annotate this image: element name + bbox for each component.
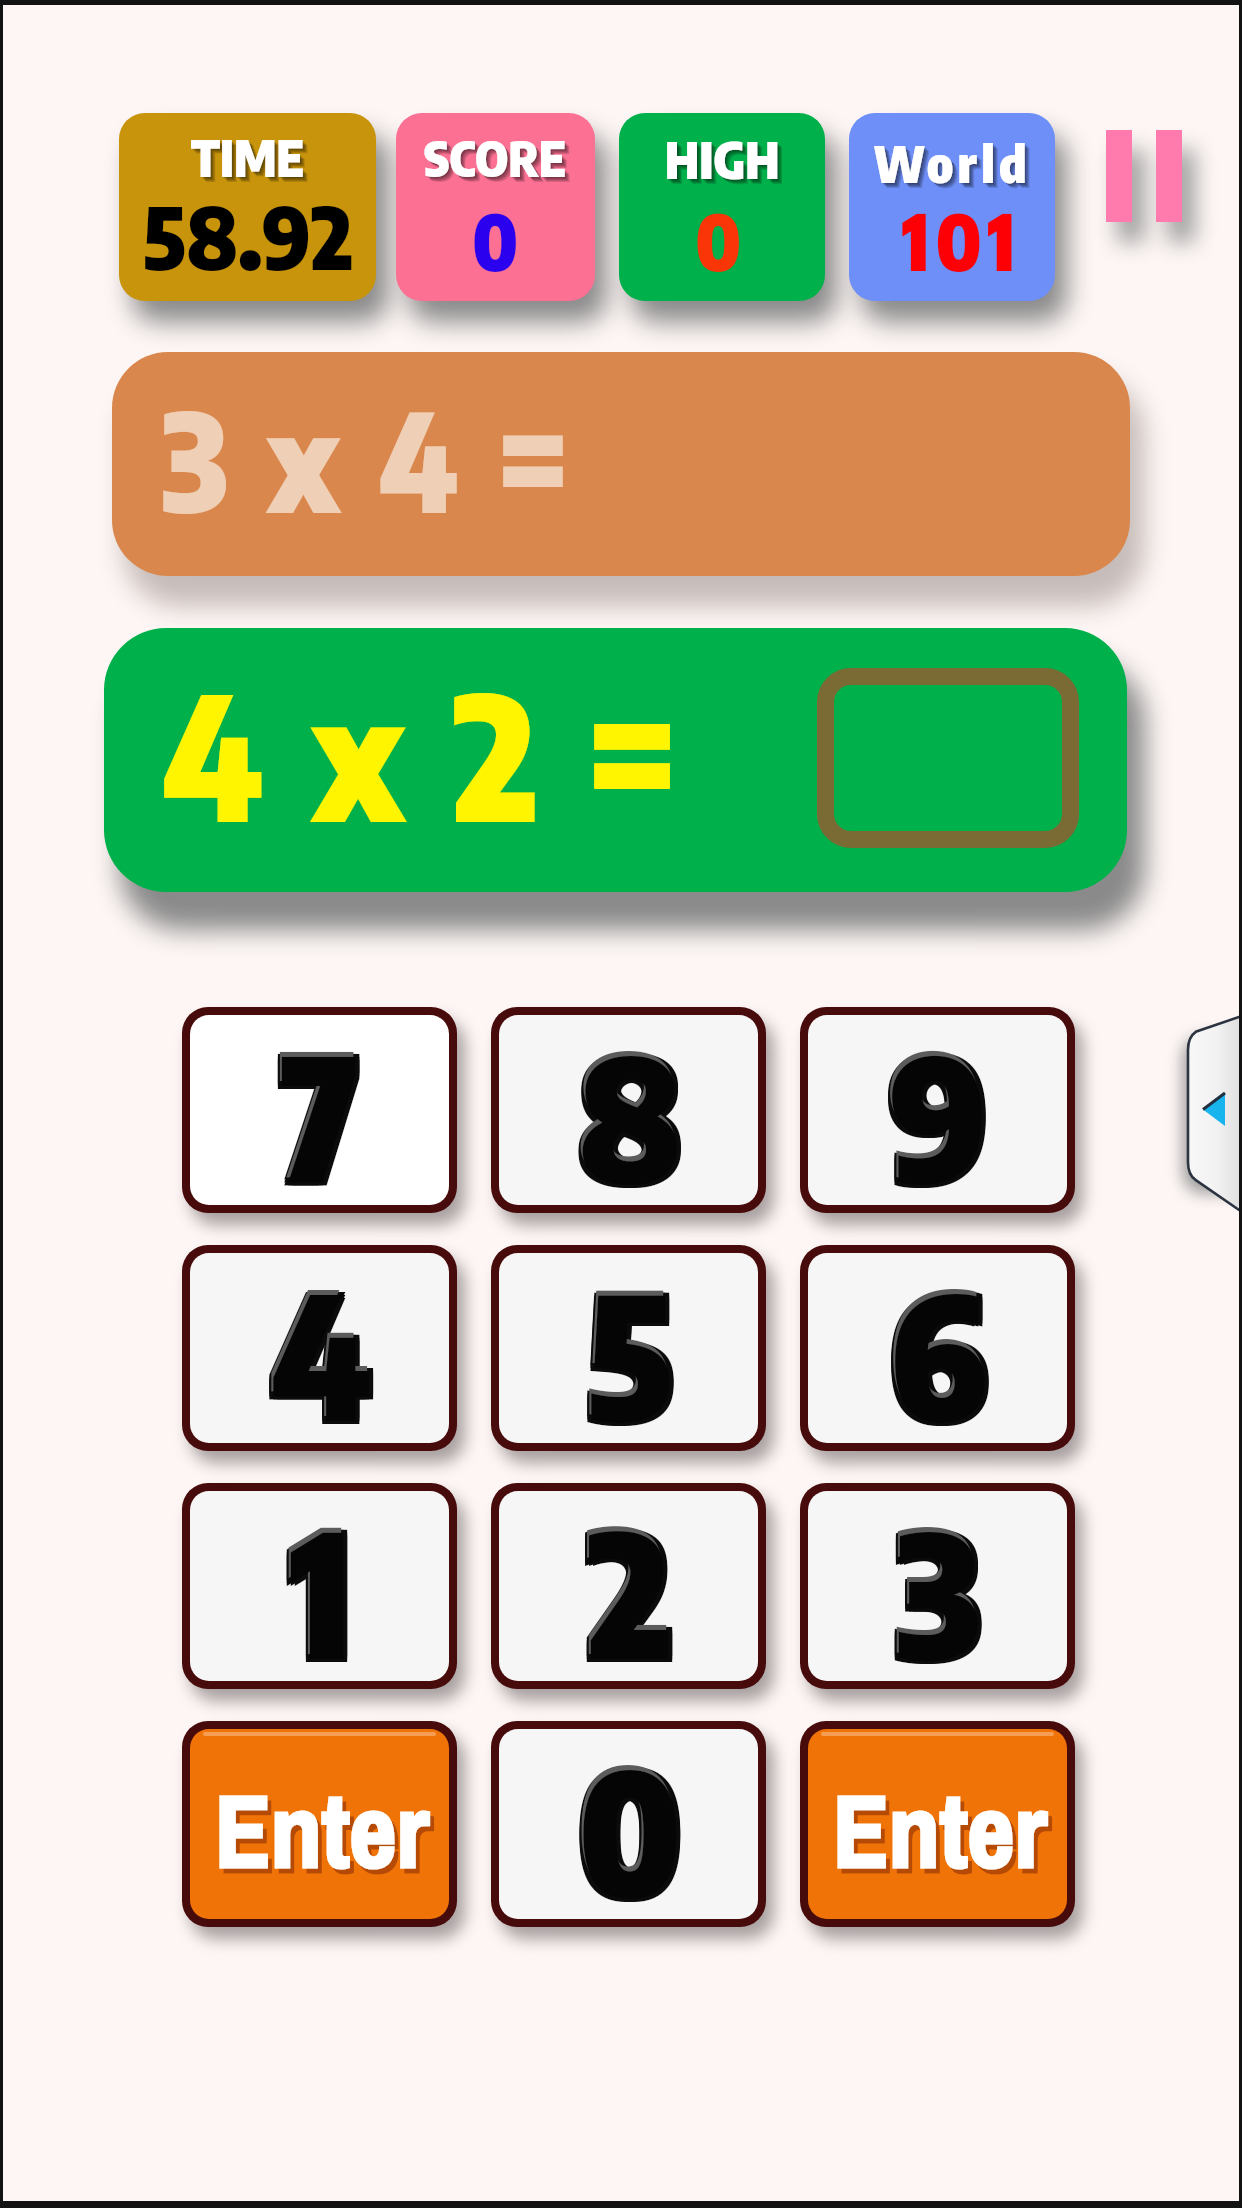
staticText: 2 (588, 1484, 672, 1690)
staticText: 8 (578, 1008, 682, 1214)
staticText: 9 (893, 1005, 992, 1211)
staticText: 5 (583, 1249, 669, 1455)
staticText: 4 (275, 1249, 375, 1455)
staticText: 6 (885, 1246, 984, 1452)
staticText: 8 (578, 1005, 682, 1211)
button[interactable]: 4 (182, 1245, 457, 1451)
staticText: 3 (897, 1487, 981, 1693)
button[interactable]: 6 (800, 1245, 1075, 1451)
staticText: 2 (584, 1487, 668, 1693)
button[interactable]: 3 x 4 = (112, 352, 1130, 576)
staticText: HIGH (668, 130, 783, 193)
staticText: 8 (578, 1008, 682, 1214)
staticText: HIGH (665, 127, 780, 190)
staticText: 6 (889, 1249, 988, 1455)
button[interactable]: 4 x 2 = (104, 628, 1127, 892)
staticText: HIGH (666, 128, 781, 191)
staticText: 0 (574, 1722, 678, 1928)
staticText: 8 (574, 1008, 678, 1214)
staticText: 1 (286, 1484, 348, 1690)
staticText: 1 (290, 1484, 352, 1690)
staticText: SCORE (424, 128, 567, 188)
staticText: HIGH (667, 129, 782, 192)
staticText: 3 (897, 1484, 981, 1690)
button[interactable]: 8 (491, 1007, 766, 1213)
staticText: 0 (472, 193, 519, 288)
staticText: World (879, 136, 1036, 199)
button[interactable]: SCORE (396, 113, 595, 301)
staticText: 5 (583, 1246, 669, 1452)
staticText: 0 (582, 1719, 686, 1925)
staticText: HIGH (670, 132, 785, 195)
staticText: 4 (269, 1241, 369, 1447)
staticText: 6 (887, 1241, 986, 1447)
staticText: World (878, 135, 1035, 198)
button[interactable]: 9 (800, 1007, 1075, 1213)
button[interactable]: Open side panel (1186, 1016, 1242, 1212)
button[interactable]: Enter (800, 1721, 1075, 1927)
staticText: 4 (267, 1243, 367, 1449)
staticText: 2 (592, 1484, 676, 1690)
staticText: 8 (578, 1011, 682, 1217)
staticText: 7 (281, 1008, 361, 1214)
staticText: 58.92 (143, 182, 353, 288)
staticText: 8 (574, 1005, 678, 1211)
staticText: Enter (833, 1761, 1047, 1898)
staticText: 0 (576, 1717, 680, 1923)
staticText: 0 (574, 1719, 678, 1925)
staticText: TIME (192, 128, 306, 189)
staticText: 3 (893, 1487, 977, 1693)
staticText: 9 (889, 1011, 988, 1217)
staticText: 1 (294, 1487, 356, 1693)
staticText: 6 (893, 1246, 992, 1452)
staticText: 9 (885, 1011, 984, 1217)
staticText: 3 (901, 1484, 985, 1690)
staticText: 2 (586, 1479, 670, 1685)
staticText: 9 (893, 1011, 992, 1217)
button[interactable]: 0 (491, 1721, 766, 1927)
button[interactable]: HIGH (619, 113, 825, 301)
button[interactable]: 7 (182, 1007, 457, 1213)
staticText: World (874, 131, 1031, 194)
staticText: 9 (887, 1003, 986, 1209)
staticText: TIME (194, 130, 308, 191)
staticText: 9 (885, 1005, 984, 1211)
staticText: 3 (893, 1481, 977, 1687)
button[interactable]: Pause (1106, 130, 1182, 222)
staticText: SCORE (427, 131, 570, 191)
staticText: TIME (195, 131, 309, 192)
staticText: Enter (215, 1761, 429, 1898)
staticText: 9 (885, 1008, 984, 1214)
button[interactable]: 2 (491, 1483, 766, 1689)
staticText: 7 (279, 1003, 359, 1209)
staticText: 7 (285, 1011, 365, 1217)
staticText: Enter (219, 1766, 433, 1903)
staticText: SCORE (426, 130, 569, 190)
staticText: TIME (193, 129, 307, 190)
button[interactable]: 1 (182, 1483, 457, 1689)
staticText: 4 x 2 = (162, 645, 683, 860)
staticText: 0 (578, 1722, 682, 1928)
staticText: 5 (587, 1246, 673, 1452)
staticText: 3 (895, 1479, 979, 1685)
staticText: 7 (277, 1011, 357, 1217)
staticText: 6 (889, 1246, 988, 1452)
staticText: 1 (290, 1487, 352, 1693)
button[interactable]: 3 (800, 1483, 1075, 1689)
staticText: 4 (275, 1246, 375, 1452)
staticText: 7 (277, 1008, 357, 1214)
staticText: TIME (196, 132, 310, 193)
staticText: 1 (290, 1484, 352, 1690)
staticText: 6 (893, 1249, 992, 1455)
staticText: 2 (588, 1487, 672, 1693)
staticText: Enter (837, 1766, 1051, 1903)
button[interactable]: 5 (491, 1245, 766, 1451)
staticText: 3 x 4 = (162, 374, 573, 543)
staticText: 6 (893, 1243, 992, 1449)
button[interactable]: TIME (119, 113, 376, 301)
button[interactable]: World (849, 113, 1055, 301)
staticText: 0 (582, 1725, 686, 1931)
staticText: 2 (588, 1484, 672, 1690)
staticText: 9 (889, 1008, 988, 1214)
button[interactable]: Enter (182, 1721, 457, 1927)
